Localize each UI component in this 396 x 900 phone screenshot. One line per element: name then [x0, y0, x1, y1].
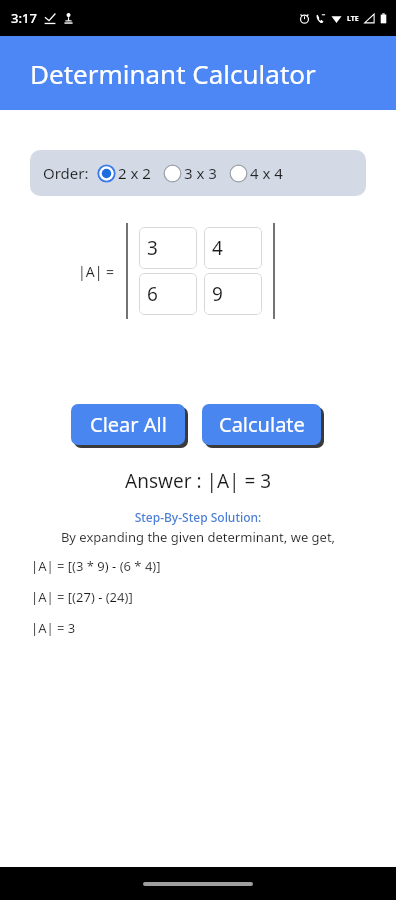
- staticText: Order:: [43, 163, 89, 183]
- staticText: |A| = [(3 * 9) - (6 * 4)]: [31, 557, 161, 575]
- staticText: Clear All: [90, 411, 167, 438]
- staticText: Answer : |A| = 3: [125, 468, 272, 494]
- button[interactable]: 3: [139, 227, 197, 269]
- staticText: LTE: [347, 14, 359, 24]
- staticText: 3:17: [11, 9, 37, 27]
- staticText: |A| = 3: [31, 619, 76, 637]
- staticText: Calculate: [219, 411, 305, 438]
- staticText: |A| =: [78, 262, 115, 281]
- button[interactable]: 4 x 4: [229, 163, 283, 183]
- staticText: 3: [147, 235, 158, 261]
- staticText: 4 x 4: [250, 163, 283, 183]
- button[interactable]: 2 x 2: [97, 163, 151, 183]
- button[interactable]: Home gesture: [143, 882, 253, 886]
- staticText: 3 x 3: [184, 163, 217, 183]
- staticText: 6: [147, 281, 158, 307]
- staticText: Determinant Calculator: [30, 56, 316, 91]
- staticText: 9: [212, 281, 223, 307]
- staticText: 2 x 2: [118, 163, 151, 183]
- staticText: |A| = [(27) - (24)]: [31, 588, 133, 606]
- button[interactable]: Determinant Calculator: [0, 36, 396, 110]
- staticText: By expanding the given determinant, we g…: [0, 528, 396, 546]
- button[interactable]: 9: [204, 273, 262, 315]
- button[interactable]: Clear All: [71, 404, 185, 445]
- button[interactable]: 3 x 3: [163, 163, 217, 183]
- button[interactable]: 4: [204, 227, 262, 269]
- button[interactable]: Calculate: [202, 404, 321, 445]
- staticText: 4: [212, 235, 223, 261]
- staticText: Step-By-Step Solution:: [0, 509, 396, 525]
- button[interactable]: 6: [139, 273, 197, 315]
